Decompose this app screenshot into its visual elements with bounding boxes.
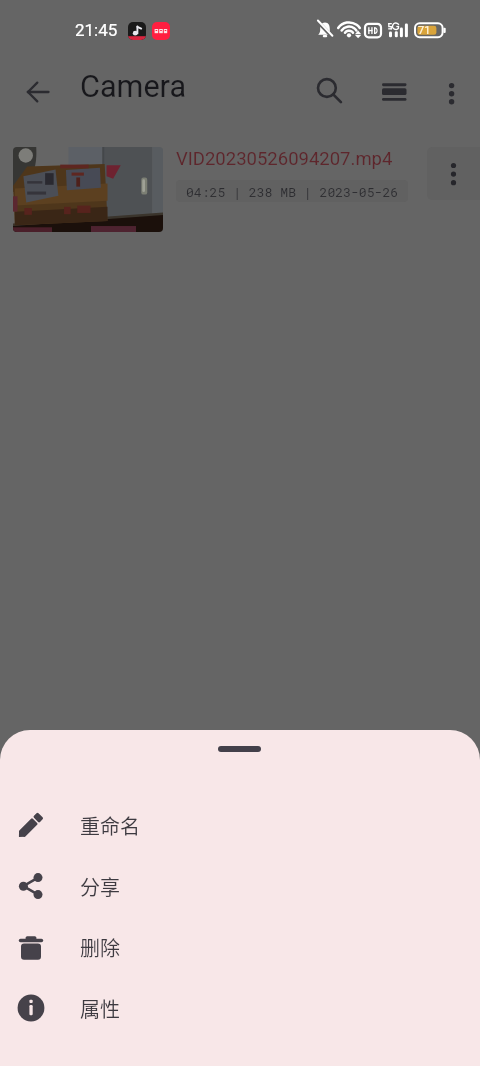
staticText: 删除	[80, 933, 120, 962]
button[interactable]: 删除	[0, 921, 480, 973]
button[interactable]: Item menu	[427, 147, 480, 200]
staticText: Camera	[80, 69, 187, 105]
staticText: 21:45	[75, 20, 118, 40]
staticText: 属性	[80, 994, 120, 1023]
button[interactable]: 重命名	[0, 799, 480, 851]
staticText: 分享	[80, 872, 120, 901]
button[interactable]: Sort	[371, 68, 417, 114]
staticText: 04:25 | 238 MB | 2023-05-26	[186, 183, 399, 200]
button[interactable]: 分享	[0, 860, 480, 912]
button[interactable]	[13, 147, 163, 232]
staticText: VID20230526094207.mp4	[176, 148, 393, 170]
button[interactable]: More options	[428, 68, 474, 114]
button[interactable]: Search	[304, 69, 350, 115]
staticText: 重命名	[80, 811, 140, 840]
button[interactable]: 属性	[0, 982, 480, 1034]
staticText: 71	[418, 24, 431, 37]
button[interactable]: Back	[15, 69, 60, 114]
